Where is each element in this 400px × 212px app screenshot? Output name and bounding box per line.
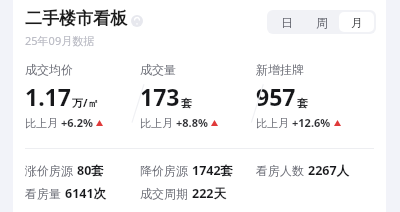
staticText: 看房量 bbox=[25, 186, 61, 201]
staticText: 成交均价 bbox=[25, 62, 73, 77]
button[interactable]: 看房量 bbox=[25, 185, 140, 202]
staticText: 周 bbox=[316, 15, 328, 30]
staticText: 25年09月数据 bbox=[25, 33, 95, 48]
staticText: 日 bbox=[281, 15, 293, 30]
staticText: 成交量 bbox=[140, 62, 176, 77]
button[interactable]: 月 bbox=[339, 12, 374, 32]
staticText: 比上月 bbox=[140, 115, 176, 130]
staticText: 6141次 bbox=[65, 185, 107, 202]
staticText: 1.17 bbox=[25, 81, 71, 112]
staticText: 月 bbox=[351, 15, 363, 30]
staticText: 2267人 bbox=[308, 162, 350, 179]
staticText: 173 bbox=[140, 81, 180, 112]
staticText: 套 bbox=[297, 96, 308, 110]
button[interactable]: 日 bbox=[269, 12, 304, 32]
button[interactable]: 成交周期 bbox=[140, 185, 256, 202]
button[interactable]: 涨价房源 bbox=[25, 162, 140, 179]
staticText: 套 bbox=[181, 96, 192, 110]
staticText: 222天 bbox=[192, 185, 226, 202]
staticText: 1742套 bbox=[192, 162, 234, 179]
button[interactable]: 降价房源 bbox=[140, 162, 256, 179]
staticText: 957 bbox=[256, 81, 296, 112]
button[interactable]: 新增挂牌 bbox=[256, 62, 378, 130]
staticText: 比上月 bbox=[256, 115, 292, 130]
staticText: +6.2% bbox=[61, 115, 93, 130]
staticText: 看房人数 bbox=[256, 163, 304, 178]
staticText: +12.6% bbox=[292, 115, 331, 130]
staticText: 比上月 bbox=[25, 115, 61, 130]
other: Help bbox=[131, 15, 143, 27]
staticText: 二手楼市看板 bbox=[25, 8, 127, 29]
button[interactable]: 周 bbox=[304, 12, 339, 32]
staticText: +8.8% bbox=[176, 115, 208, 130]
staticText: 80套 bbox=[77, 162, 104, 179]
button[interactable]: 看房人数 bbox=[256, 162, 378, 179]
staticText: 万/㎡ bbox=[72, 95, 99, 110]
staticText: 新增挂牌 bbox=[256, 62, 304, 77]
button[interactable]: 成交均价 bbox=[25, 62, 140, 130]
staticText: 涨价房源 bbox=[25, 163, 73, 178]
button[interactable]: 成交量 bbox=[140, 62, 256, 130]
staticText: 降价房源 bbox=[140, 163, 188, 178]
staticText: 成交周期 bbox=[140, 186, 188, 201]
